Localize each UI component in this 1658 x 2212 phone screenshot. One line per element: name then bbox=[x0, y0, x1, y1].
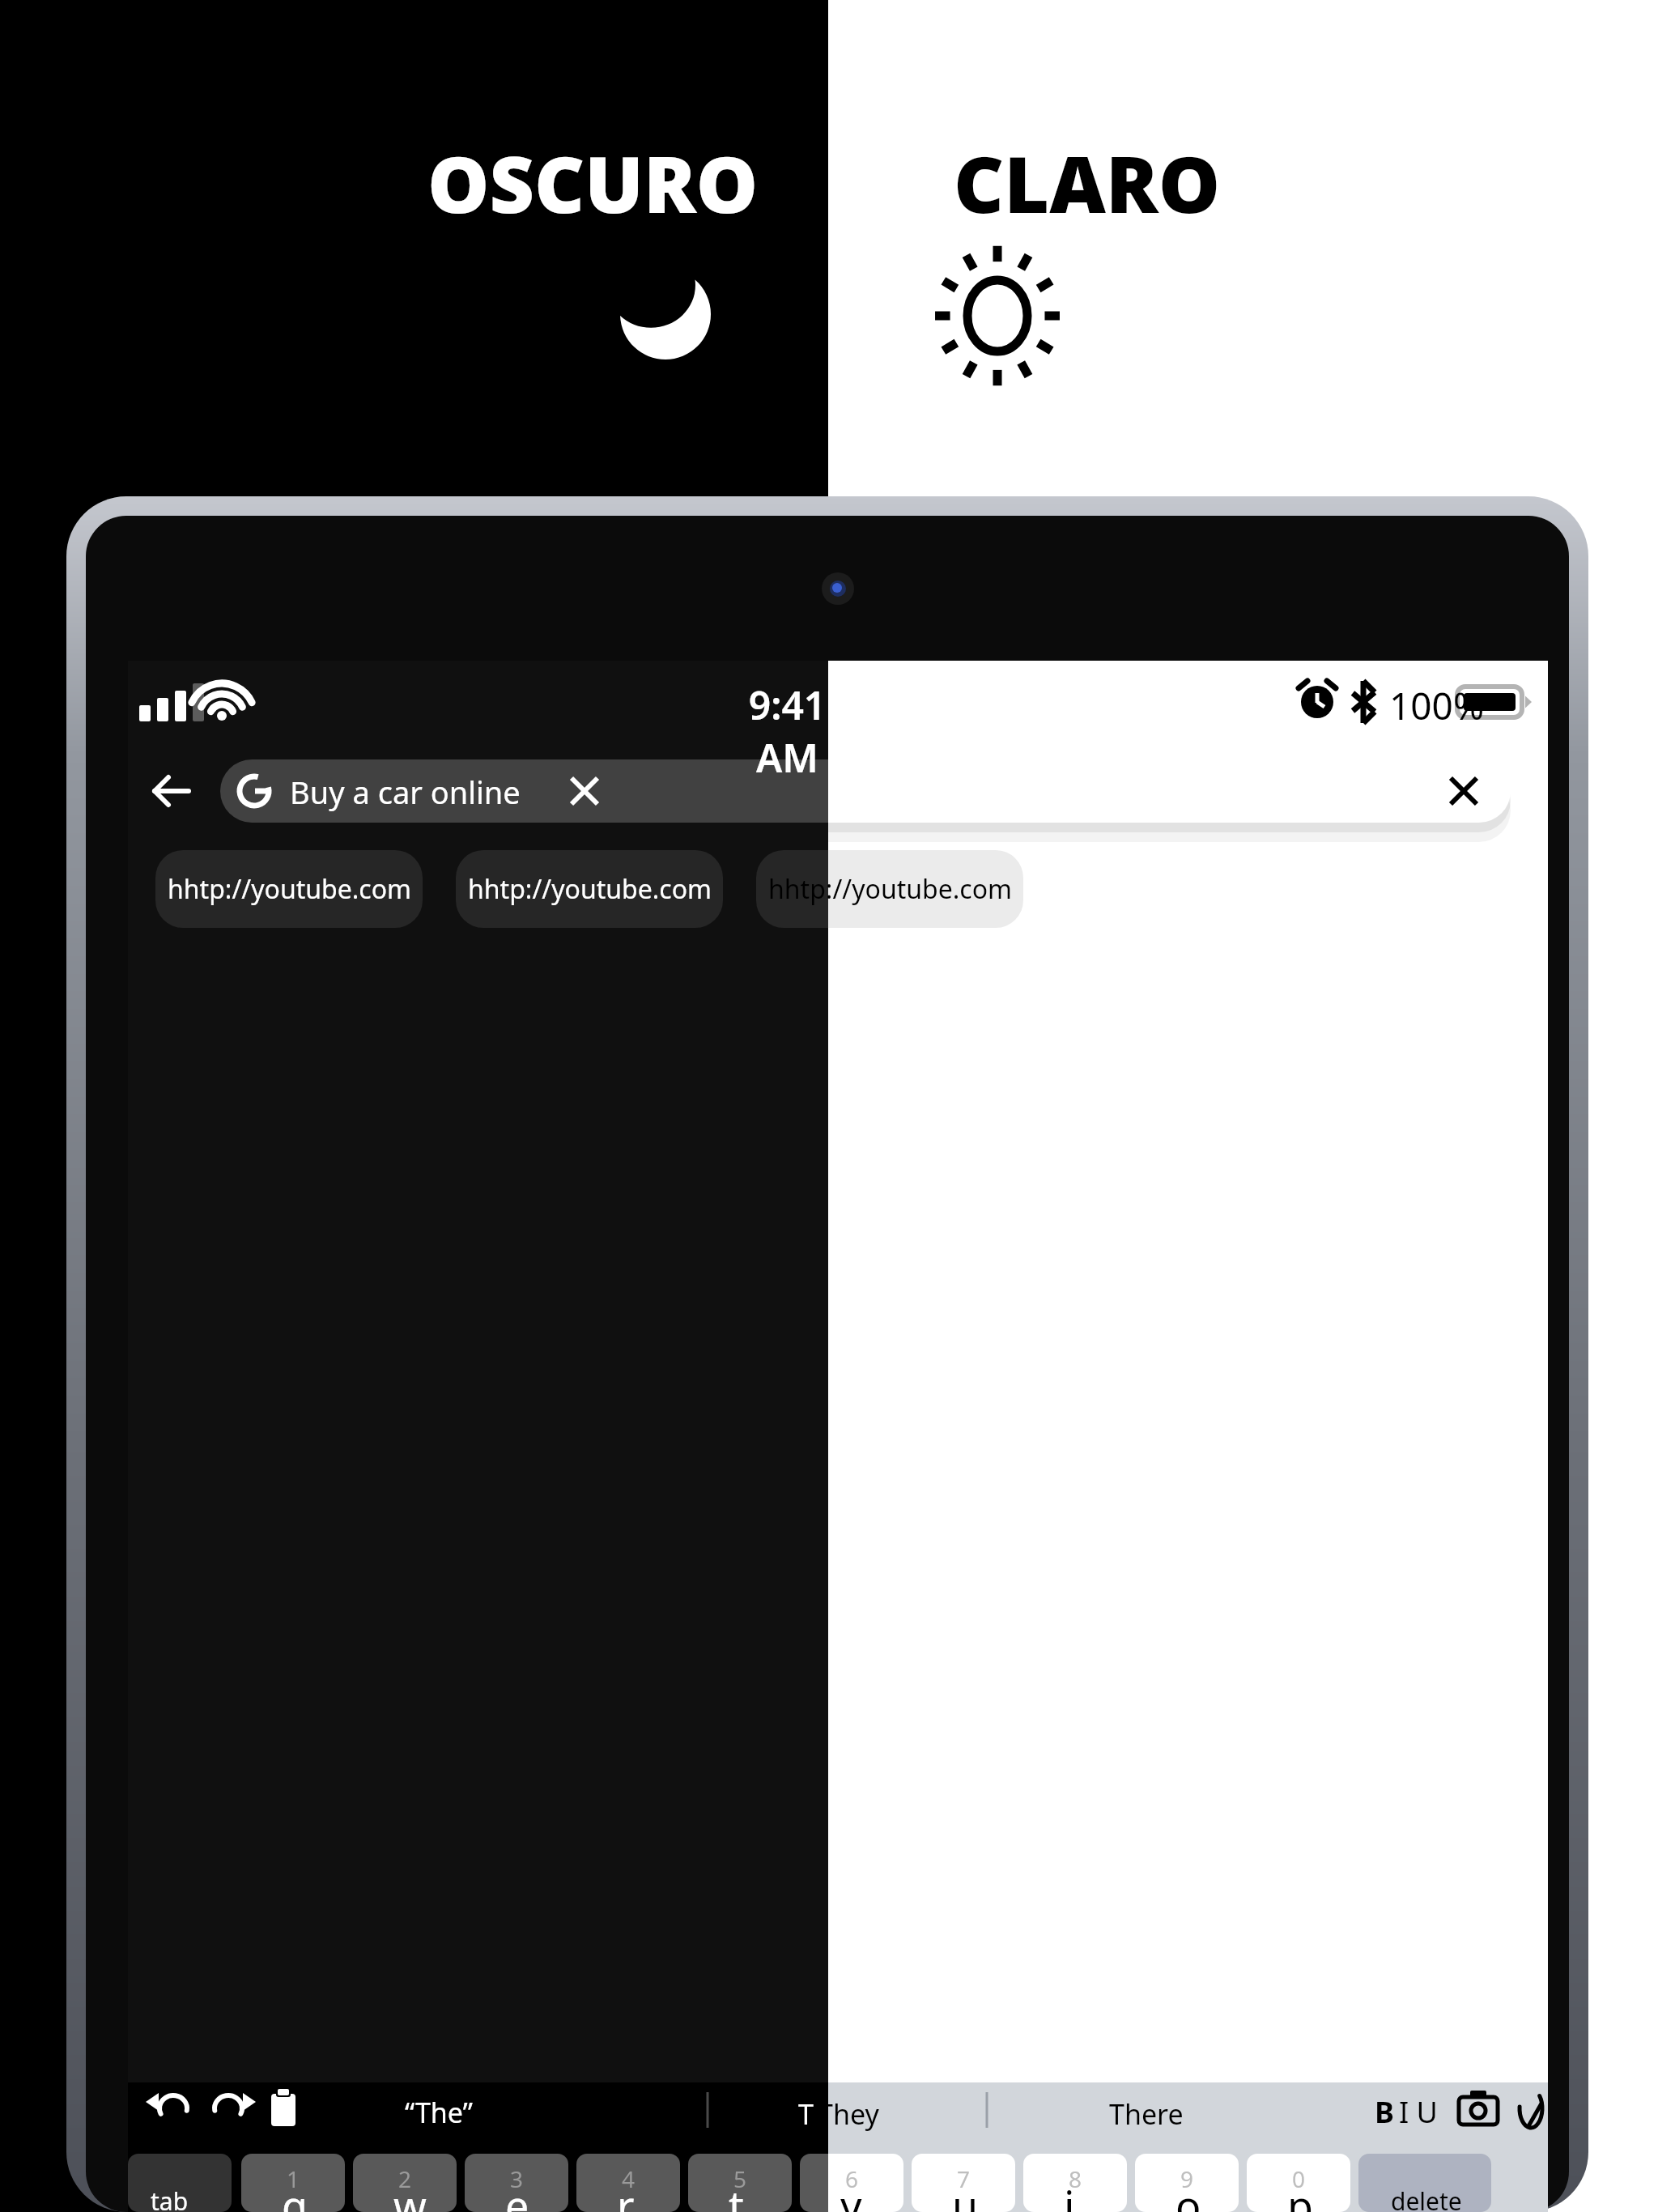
staticText: 9 bbox=[1180, 2163, 1194, 2194]
button[interactable]: Undo bbox=[142, 2082, 206, 2139]
button[interactable]: p bbox=[1287, 2176, 1313, 2212]
staticText: hhtp://youtube.com bbox=[468, 871, 712, 907]
button[interactable]: hhtp://youtube.com bbox=[155, 850, 423, 928]
staticText: tab bbox=[151, 2184, 189, 2212]
staticText: 9:41 AM bbox=[828, 678, 835, 784]
button[interactable]: tab bbox=[151, 2184, 189, 2212]
button[interactable]: w bbox=[393, 2176, 427, 2212]
button[interactable]: i bbox=[1064, 2176, 1075, 2212]
button[interactable]: Buy a car online bbox=[290, 771, 521, 813]
staticText: CLARO bbox=[954, 130, 1221, 236]
button[interactable]: y bbox=[840, 2176, 862, 2212]
staticText: hhtp://youtube.com bbox=[768, 871, 1012, 907]
staticText: “The” bbox=[405, 2094, 473, 2131]
staticText: 100% bbox=[1389, 680, 1485, 731]
staticText: u bbox=[952, 2176, 979, 2212]
button[interactable]: hhtp://youtube.com bbox=[456, 850, 723, 928]
staticText: B bbox=[1375, 2092, 1394, 2132]
staticText: o bbox=[1175, 2176, 1201, 2212]
button[interactable]: Redo bbox=[199, 2082, 257, 2139]
button[interactable]: Clipboard bbox=[256, 2082, 314, 2139]
staticText: 9:41 AM bbox=[746, 678, 828, 784]
button[interactable]: o bbox=[1175, 2176, 1201, 2212]
staticText: 6 bbox=[845, 2163, 859, 2194]
staticText: 4 bbox=[622, 2163, 636, 2194]
button[interactable]: Camera bbox=[1452, 2082, 1506, 2139]
staticText: 5 bbox=[733, 2163, 747, 2194]
staticText: I U bbox=[1399, 2092, 1438, 2132]
staticText: 2 bbox=[398, 2163, 412, 2194]
staticText: w bbox=[393, 2176, 427, 2212]
staticText: 8 bbox=[1069, 2163, 1082, 2194]
button[interactable]: e bbox=[505, 2176, 529, 2212]
staticText: 1 bbox=[287, 2163, 300, 2194]
staticText: y bbox=[840, 2176, 862, 2212]
staticText: OSCURO bbox=[427, 130, 759, 236]
staticText: They bbox=[818, 2095, 879, 2133]
staticText: 3 bbox=[510, 2163, 524, 2194]
button[interactable]: q bbox=[282, 2176, 308, 2212]
button[interactable]: Attach file bbox=[1507, 2082, 1561, 2139]
staticText: delete bbox=[1391, 2184, 1462, 2212]
button[interactable]: u bbox=[952, 2176, 979, 2212]
button[interactable]: Back bbox=[142, 759, 204, 823]
staticText: hhtp://youtube.com bbox=[168, 871, 411, 907]
staticText: Buy a car online bbox=[290, 771, 521, 813]
staticText: T bbox=[798, 2095, 814, 2133]
staticText: q bbox=[282, 2176, 308, 2212]
button[interactable]: delete bbox=[1391, 2184, 1462, 2212]
button[interactable]: Close bbox=[1438, 766, 1490, 818]
staticText: r bbox=[617, 2176, 635, 2212]
button[interactable]: Clear search bbox=[559, 766, 610, 818]
staticText: e bbox=[505, 2176, 529, 2212]
staticText: i bbox=[1064, 2176, 1075, 2212]
staticText: p bbox=[1287, 2176, 1313, 2212]
button[interactable]: hhtp://youtube.com bbox=[756, 850, 1023, 928]
staticText: There bbox=[1109, 2095, 1184, 2133]
staticText: 7 bbox=[957, 2163, 971, 2194]
button[interactable] bbox=[220, 759, 1511, 823]
staticText: 0 bbox=[1292, 2163, 1306, 2194]
staticText: t bbox=[729, 2176, 744, 2212]
button[interactable]: r bbox=[617, 2176, 635, 2212]
button[interactable]: t bbox=[729, 2176, 744, 2212]
